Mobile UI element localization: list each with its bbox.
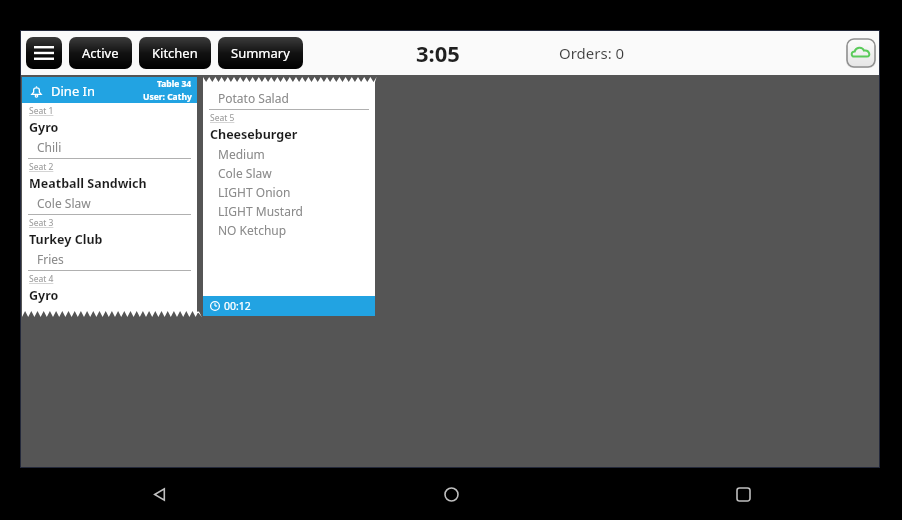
button[interactable]: Home: [431, 474, 471, 514]
staticText: Meatball Sandwich: [29, 175, 147, 192]
button[interactable]: Cloud sync: [846, 38, 876, 68]
staticText: 3:05: [416, 38, 460, 68]
button[interactable]: Recents: [723, 474, 763, 514]
staticText: Cole Slaw: [218, 165, 272, 181]
staticText: NO Ketchup: [218, 222, 287, 238]
staticText: LIGHT Onion: [218, 184, 291, 200]
staticText: Seat 5: [210, 112, 235, 124]
staticText: Seat 4: [29, 273, 54, 285]
button[interactable]: Back: [139, 474, 179, 514]
staticText: Potato Salad: [218, 90, 289, 106]
button[interactable]: Menu: [26, 37, 62, 69]
staticText: Turkey Club: [29, 231, 103, 248]
staticText: Fries: [37, 251, 64, 267]
staticText: Seat 3: [29, 217, 54, 229]
button[interactable]: Kitchen: [139, 37, 211, 69]
staticText: Active: [82, 44, 119, 62]
staticText: Kitchen: [152, 44, 198, 62]
staticText: Cole Slaw: [37, 195, 91, 211]
button[interactable]: Summary: [218, 37, 303, 69]
staticText: Medium: [218, 146, 265, 162]
staticText: 00:12: [224, 299, 251, 313]
button[interactable]: Potato Salad: [203, 77, 375, 316]
staticText: Gyro: [29, 119, 59, 136]
staticText: Dine In: [51, 82, 96, 100]
staticText: Summary: [231, 44, 290, 62]
staticText: Cheeseburger: [210, 126, 298, 143]
staticText: Seat 2: [29, 161, 54, 173]
staticText: Orders: 0: [559, 43, 625, 63]
button[interactable]: Active: [69, 37, 132, 69]
staticText: Chili: [37, 139, 62, 155]
staticText: Seat 1: [29, 105, 54, 117]
staticText: Gyro: [29, 287, 59, 304]
staticText: User: Cathy: [143, 91, 192, 103]
button[interactable]: Dine In: [22, 77, 197, 317]
staticText: LIGHT Mustard: [218, 203, 303, 219]
staticText: Table 34: [157, 78, 192, 90]
